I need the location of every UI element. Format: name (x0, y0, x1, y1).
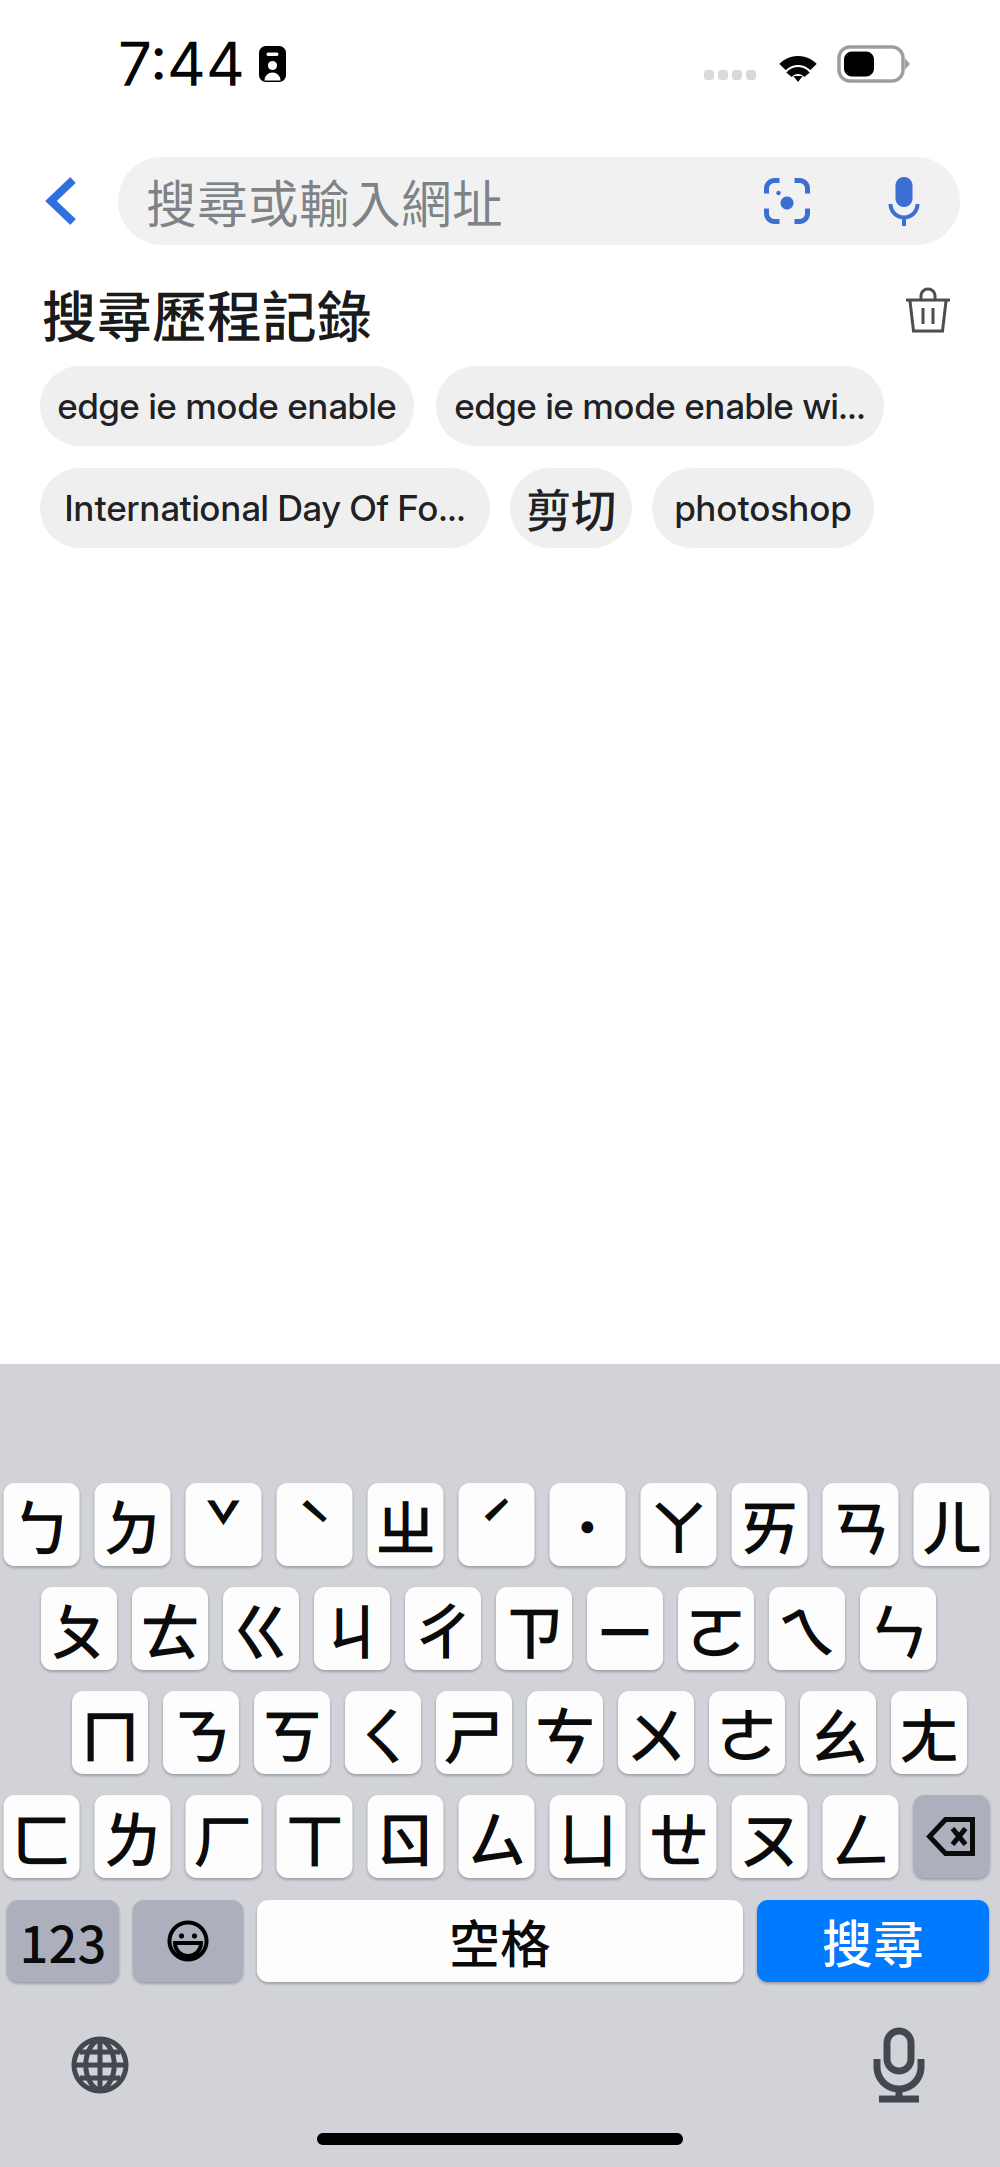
button[interactable]: ㄓ (367, 1483, 443, 1566)
button[interactable]: edge ie mode enable wi... (436, 366, 884, 446)
button[interactable]: ㄋ (163, 1691, 239, 1774)
staticText: ㄍ (230, 1584, 291, 1673)
staticText: edge ie mode enable (57, 384, 396, 428)
button[interactable]: ㄣ (860, 1587, 936, 1670)
button[interactable]: ㄟ (769, 1587, 845, 1670)
button[interactable]: ㄢ (822, 1483, 898, 1566)
button[interactable]: ㄚ (640, 1483, 716, 1566)
staticText: ㄤ (898, 1688, 959, 1777)
staticText: ㄩ (557, 1792, 618, 1881)
button[interactable]: Voice search (866, 157, 942, 245)
button[interactable]: ㄜ (709, 1691, 785, 1774)
button[interactable]: ㄘ (527, 1691, 603, 1774)
staticText: ㄞ (739, 1480, 800, 1569)
staticText: ㄘ (534, 1688, 595, 1777)
button[interactable]: Search with camera (750, 157, 824, 245)
button[interactable]: Emoji (133, 1900, 243, 1982)
staticText: ˙ (572, 1480, 603, 1569)
button[interactable]: Dictation (871, 2025, 927, 2105)
button[interactable]: ˇ (185, 1483, 261, 1566)
button[interactable]: ㄈ (3, 1795, 79, 1878)
button[interactable]: ˙ (549, 1483, 625, 1566)
button[interactable]: Delete (913, 1795, 989, 1878)
staticText: 搜尋 (822, 1904, 924, 1978)
button[interactable]: ㄏ (185, 1795, 261, 1878)
button[interactable]: ㄌ (94, 1795, 170, 1878)
button[interactable]: ㄛ (678, 1587, 754, 1670)
staticText: 搜尋歷程記錄 (42, 273, 372, 353)
staticText: ㄖ (375, 1792, 436, 1881)
button[interactable]: ㄡ (731, 1795, 807, 1878)
button[interactable]: ㄉ (94, 1483, 170, 1566)
button[interactable]: ㄤ (891, 1691, 967, 1774)
staticText: ㄌ (102, 1792, 163, 1881)
staticText: ㄙ (466, 1792, 527, 1881)
button[interactable]: photoshop (652, 468, 874, 548)
button[interactable]: Back (16, 157, 108, 245)
button[interactable]: ㄅ (3, 1483, 79, 1566)
button[interactable]: ㄨ (618, 1691, 694, 1774)
staticText: ㄇ (79, 1688, 140, 1777)
button[interactable]: International Day Of Fo... (40, 468, 490, 548)
button[interactable]: ㄆ (41, 1587, 117, 1670)
button[interactable]: ㄍ (223, 1587, 299, 1670)
staticText: ㄚ (648, 1480, 709, 1569)
button[interactable]: ㄠ (800, 1691, 876, 1774)
button[interactable]: ㄧ (587, 1587, 663, 1670)
button[interactable]: ㄥ (822, 1795, 898, 1878)
button[interactable]: 空格 (257, 1900, 743, 1982)
button[interactable]: ˊ (458, 1483, 534, 1566)
staticText: ㄜ (716, 1688, 777, 1777)
staticText: ㄅ (11, 1480, 72, 1569)
button[interactable]: ㄔ (405, 1587, 481, 1670)
button[interactable]: ㄐ (314, 1587, 390, 1670)
staticText: edge ie mode enable wi... (454, 384, 865, 428)
staticText: ㄛ (685, 1584, 746, 1673)
button[interactable]: ㄦ (913, 1483, 989, 1566)
button[interactable]: ㄝ (640, 1795, 716, 1878)
staticText: ˊ (478, 1480, 515, 1569)
staticText: ㄦ (921, 1480, 982, 1569)
button[interactable]: ㄑ (345, 1691, 421, 1774)
staticText: ㄟ (776, 1584, 837, 1673)
button[interactable]: ㄗ (496, 1587, 572, 1670)
button[interactable]: 搜尋 (757, 1900, 989, 1982)
button[interactable]: edge ie mode enable (40, 366, 414, 446)
button[interactable]: 123 (7, 1900, 119, 1982)
staticText: ㄎ (261, 1688, 322, 1777)
staticText: International Day Of Fo... (64, 486, 465, 530)
staticText: ㄝ (648, 1792, 709, 1881)
button[interactable]: ㄎ (254, 1691, 330, 1774)
staticText: ㄧ (594, 1584, 655, 1673)
button[interactable]: ㄇ (72, 1691, 148, 1774)
button[interactable]: ㄩ (549, 1795, 625, 1878)
button[interactable]: ㄙ (458, 1795, 534, 1878)
button[interactable]: ㄕ (436, 1691, 512, 1774)
staticText: ㄏ (193, 1792, 254, 1881)
staticText: ㄑ (352, 1688, 413, 1777)
staticText: ㄨ (625, 1688, 686, 1777)
staticText: ㄡ (739, 1792, 800, 1881)
button[interactable]: ㄒ (276, 1795, 352, 1878)
button[interactable]: ㄖ (367, 1795, 443, 1878)
staticText: ㄔ (412, 1584, 473, 1673)
staticText: ㄗ (503, 1584, 564, 1673)
staticText: 空格 (449, 1904, 551, 1978)
staticText: photoshop (674, 486, 851, 530)
staticText: ㄕ (443, 1688, 504, 1777)
button[interactable]: ㄞ (731, 1483, 807, 1566)
staticText: 123 (19, 1904, 106, 1978)
staticText: 剪切 (526, 475, 616, 541)
button[interactable]: ㄊ (132, 1587, 208, 1670)
staticText: ㄊ (139, 1584, 200, 1673)
button[interactable]: 剪切 (510, 468, 632, 548)
button[interactable]: Next keyboard (71, 2033, 129, 2097)
staticText: 7:44 (118, 28, 245, 100)
staticText: 搜尋或輸入網址 (146, 164, 503, 238)
staticText: ㄢ (830, 1480, 891, 1569)
button[interactable]: ˋ (276, 1483, 352, 1566)
staticText: ㄉ (102, 1480, 163, 1569)
staticText: ˇ (205, 1480, 242, 1569)
staticText: ㄠ (807, 1688, 868, 1777)
button[interactable]: Clear search history (894, 285, 962, 341)
